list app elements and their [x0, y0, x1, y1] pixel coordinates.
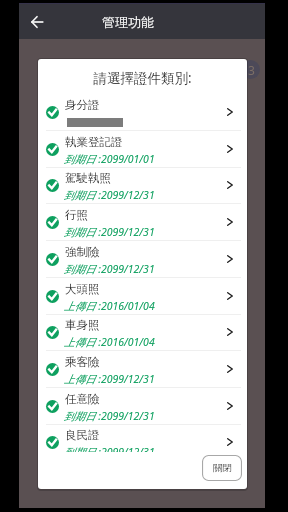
staticText: 上傳日 :2016/01/04: [64, 335, 155, 349]
staticText: 身分證: [65, 98, 100, 112]
button[interactable]: 乘客險: [38, 351, 247, 388]
staticText: 到期日 :2099/01/01: [64, 152, 155, 166]
staticText: 到期日 :2099/12/31: [64, 188, 155, 202]
staticText: 任意險: [65, 392, 100, 406]
button[interactable]: 執業登記證: [38, 131, 247, 168]
staticText: 3: [248, 62, 255, 78]
staticText: 上傳日 :2016/01/04: [64, 299, 155, 313]
button[interactable]: 任意險: [38, 388, 247, 425]
button[interactable]: 身分證: [38, 94, 247, 131]
staticText: 良民證: [65, 428, 100, 442]
button[interactable]: 良民證: [38, 424, 247, 452]
button[interactable]: 大頭照: [38, 278, 247, 315]
staticText: 到期日 :2099/12/31: [64, 225, 155, 239]
staticText: 到期日 :2099/12/31: [64, 262, 155, 276]
staticText: 上傳日 :2099/12/31: [64, 372, 155, 386]
button[interactable]: 關閉: [202, 455, 242, 481]
staticText: 關閉: [213, 462, 232, 474]
button[interactable]: 駕駛執照: [38, 167, 247, 204]
button[interactable]: Back: [22, 7, 52, 37]
button[interactable]: 行照: [38, 204, 247, 241]
staticText: 強制險: [65, 245, 100, 259]
staticText: 行照: [65, 208, 88, 222]
staticText: 執業登記證: [65, 135, 123, 149]
button[interactable]: 車身照: [38, 314, 247, 351]
staticText: 車身照: [65, 318, 100, 332]
staticText: 到期日 :2099/12/31: [64, 445, 155, 452]
staticText: 請選擇證件類別:: [38, 69, 247, 87]
staticText: 駕駛執照: [65, 171, 111, 185]
staticText: 管理功能: [102, 14, 154, 30]
staticText: 到期日 :2099/12/31: [64, 409, 155, 423]
button[interactable]: 強制險: [38, 241, 247, 278]
staticText: 大頭照: [65, 282, 100, 296]
staticText: 乘客險: [65, 355, 100, 369]
